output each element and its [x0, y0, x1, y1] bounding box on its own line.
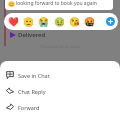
staticText: 😊: [8, 1, 15, 7]
button[interactable]: 🤢: [54, 17, 64, 27]
staticText: Save in Chat: [18, 72, 50, 79]
button[interactable]: 😭: [38, 17, 48, 27]
staticText: 🫡: [23, 17, 33, 27]
button[interactable]: Save in Chat: [0, 67, 120, 83]
staticText: Delivered: [18, 31, 46, 39]
staticText: You added Nic to a chat: [0, 44, 120, 49]
button[interactable]: 😘: [69, 17, 79, 27]
button[interactable]: Add reaction: [106, 17, 115, 26]
button[interactable]: 🤬: [84, 17, 94, 27]
staticText: 🤢: [54, 17, 64, 27]
staticText: 😘: [69, 17, 79, 27]
staticText: ❤️: [8, 17, 18, 27]
button[interactable]: ❤️: [8, 17, 18, 27]
staticText: 😭: [38, 17, 48, 27]
staticText: 🤬: [84, 17, 94, 27]
staticText: looking forward to book you again: [16, 0, 97, 7]
button[interactable]: Forward: [0, 99, 120, 115]
button[interactable]: 🫡: [23, 17, 33, 27]
button[interactable]: Chat Reply: [0, 83, 120, 99]
staticText: Forward: [18, 104, 40, 111]
staticText: Chat Reply: [18, 88, 46, 95]
